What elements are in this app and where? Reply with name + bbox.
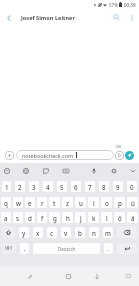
button[interactable]: .	[104, 243, 113, 254]
button[interactable]: ü	[127, 197, 138, 208]
button[interactable]: x	[33, 227, 43, 238]
button[interactable]: 8	[99, 181, 109, 192]
button[interactable]: n	[89, 227, 99, 238]
button[interactable]: notebookcheck.com	[16, 150, 114, 160]
button[interactable]: Back	[0, 9, 17, 26]
button[interactable]: i	[88, 197, 99, 208]
staticText: notebookcheck.com	[22, 152, 74, 159]
button[interactable]: f	[37, 212, 47, 223]
button[interactable]: key	[2, 227, 15, 238]
staticText: !#1	[5, 245, 13, 252]
button[interactable]: Tabs	[115, 151, 124, 160]
button[interactable]: 0	[127, 181, 137, 192]
staticText: l	[106, 214, 108, 222]
button[interactable]: New tab	[5, 151, 14, 160]
staticText: b	[78, 229, 82, 237]
button[interactable]: key	[117, 227, 137, 238]
button[interactable]: o	[101, 197, 112, 208]
staticText: y	[22, 229, 26, 237]
button[interactable]: 9	[113, 181, 123, 192]
staticText: s	[16, 214, 20, 222]
staticText: 148	[115, 144, 122, 149]
button[interactable]: s	[13, 212, 23, 223]
button[interactable]: p	[114, 197, 125, 208]
staticText: 8	[102, 183, 106, 191]
staticText: n	[92, 229, 96, 237]
staticText: t	[53, 199, 56, 207]
button[interactable]: r	[37, 197, 47, 208]
button[interactable]: GIF	[61, 163, 71, 179]
staticText: 4	[46, 183, 50, 191]
button[interactable]: ö	[114, 212, 125, 223]
button[interactable]: q	[1, 197, 11, 208]
staticText: ü	[131, 199, 135, 207]
button[interactable]: k	[88, 212, 99, 223]
staticText: ä	[131, 214, 135, 222]
staticText: z	[66, 199, 69, 207]
button[interactable]: Stickers	[41, 163, 51, 179]
button[interactable]: Home	[60, 266, 77, 286]
staticText: h	[66, 214, 70, 222]
staticText: u	[79, 199, 83, 207]
staticText: v	[64, 229, 68, 237]
button[interactable]: u	[75, 197, 86, 208]
button[interactable]: b	[75, 227, 85, 238]
button[interactable]: 3	[29, 181, 39, 192]
staticText: ,	[24, 245, 26, 253]
button[interactable]: 5	[57, 181, 67, 192]
button[interactable]: Deutsch	[33, 243, 100, 254]
button[interactable]: Settings	[109, 163, 119, 179]
button[interactable]: Search	[108, 9, 125, 26]
staticText: f	[41, 214, 44, 222]
button[interactable]: Emoji	[21, 163, 31, 179]
button[interactable]: m	[103, 227, 113, 238]
button[interactable]: ,	[20, 243, 29, 254]
button[interactable]: v	[61, 227, 71, 238]
staticText: a	[4, 214, 8, 222]
staticText: m	[105, 229, 111, 237]
button[interactable]: e	[25, 197, 35, 208]
button[interactable]: Send	[125, 151, 134, 160]
button[interactable]: Collapse	[128, 163, 138, 179]
button[interactable]: h	[62, 212, 73, 223]
button[interactable]: !#1	[2, 243, 16, 254]
button[interactable]: Recents	[0, 266, 60, 286]
button[interactable]: z	[62, 197, 73, 208]
staticText: 57%	[109, 2, 118, 8]
staticText: 6	[74, 183, 78, 191]
button[interactable]: Expression	[2, 163, 12, 179]
staticText: g	[53, 214, 57, 222]
staticText: 3	[32, 183, 36, 191]
button[interactable]: 2	[15, 181, 25, 192]
button[interactable]: w	[13, 197, 23, 208]
staticText: ö	[118, 214, 122, 222]
staticText: r	[41, 199, 44, 207]
staticText: k	[92, 214, 96, 222]
button[interactable]: g	[49, 212, 60, 223]
button[interactable]: 6	[71, 181, 81, 192]
button[interactable]: ä	[127, 212, 138, 223]
button[interactable]: 4	[43, 181, 53, 192]
button[interactable]: y	[19, 227, 29, 238]
staticText: Deutsch	[58, 246, 76, 252]
button[interactable]: Voice input	[89, 163, 99, 179]
button[interactable]: a	[1, 212, 11, 223]
staticText: c	[50, 229, 54, 237]
button[interactable]: j	[75, 212, 86, 223]
button[interactable]: Enter	[117, 243, 137, 254]
button[interactable]: More options	[125, 9, 139, 26]
staticText: 7	[88, 183, 92, 191]
staticText: o	[105, 199, 109, 207]
button[interactable]: t	[49, 197, 60, 208]
staticText: e	[28, 199, 32, 207]
button[interactable]: 7	[85, 181, 95, 192]
button[interactable]: 1	[2, 181, 11, 192]
button[interactable]: Back	[77, 266, 117, 286]
button[interactable]: Hide keyboard	[117, 266, 139, 286]
button[interactable]: c	[47, 227, 57, 238]
button[interactable]: d	[25, 212, 35, 223]
button[interactable]: l	[101, 212, 112, 223]
staticText: 1	[5, 183, 9, 191]
staticText: j	[80, 214, 82, 222]
staticText: Josef Simon Leitner	[21, 14, 75, 22]
